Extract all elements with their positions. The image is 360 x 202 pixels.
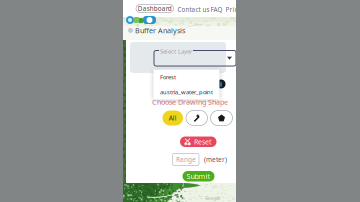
staticText: All [169,113,177,123]
staticText: Select Layer [160,47,192,55]
staticText: Forest [160,73,176,81]
button[interactable]: Polygon draw [210,110,232,125]
staticText: (meter) [204,155,227,164]
button[interactable]: Submit [182,171,214,181]
staticText: FAQ [210,5,222,14]
button[interactable]: Contact us [177,5,209,14]
staticText: Choose Drawing Shape [152,97,228,107]
staticText: Reset [194,137,212,146]
button[interactable]: Forest [153,69,219,84]
button[interactable]: FAQ [210,5,222,14]
staticText: i [220,79,222,89]
staticText: Buffer Analysis [135,25,185,35]
button[interactable]: Dashboard [136,4,173,12]
staticText: Range [176,155,196,164]
staticText: austria_water_point [160,88,213,96]
staticText: Submit [186,171,210,181]
button[interactable]: Select Layer [154,50,236,66]
staticText: Dashboard [138,4,172,13]
staticText: Pric [225,5,237,14]
button[interactable]: austria_water_point [153,84,219,99]
button[interactable]: Reset [180,136,216,147]
button[interactable]: All [162,110,183,125]
staticText: Contact us [177,5,209,14]
button[interactable]: Pric [225,5,237,14]
staticText: Google [205,195,220,201]
button[interactable]: Freehand draw [186,110,207,125]
